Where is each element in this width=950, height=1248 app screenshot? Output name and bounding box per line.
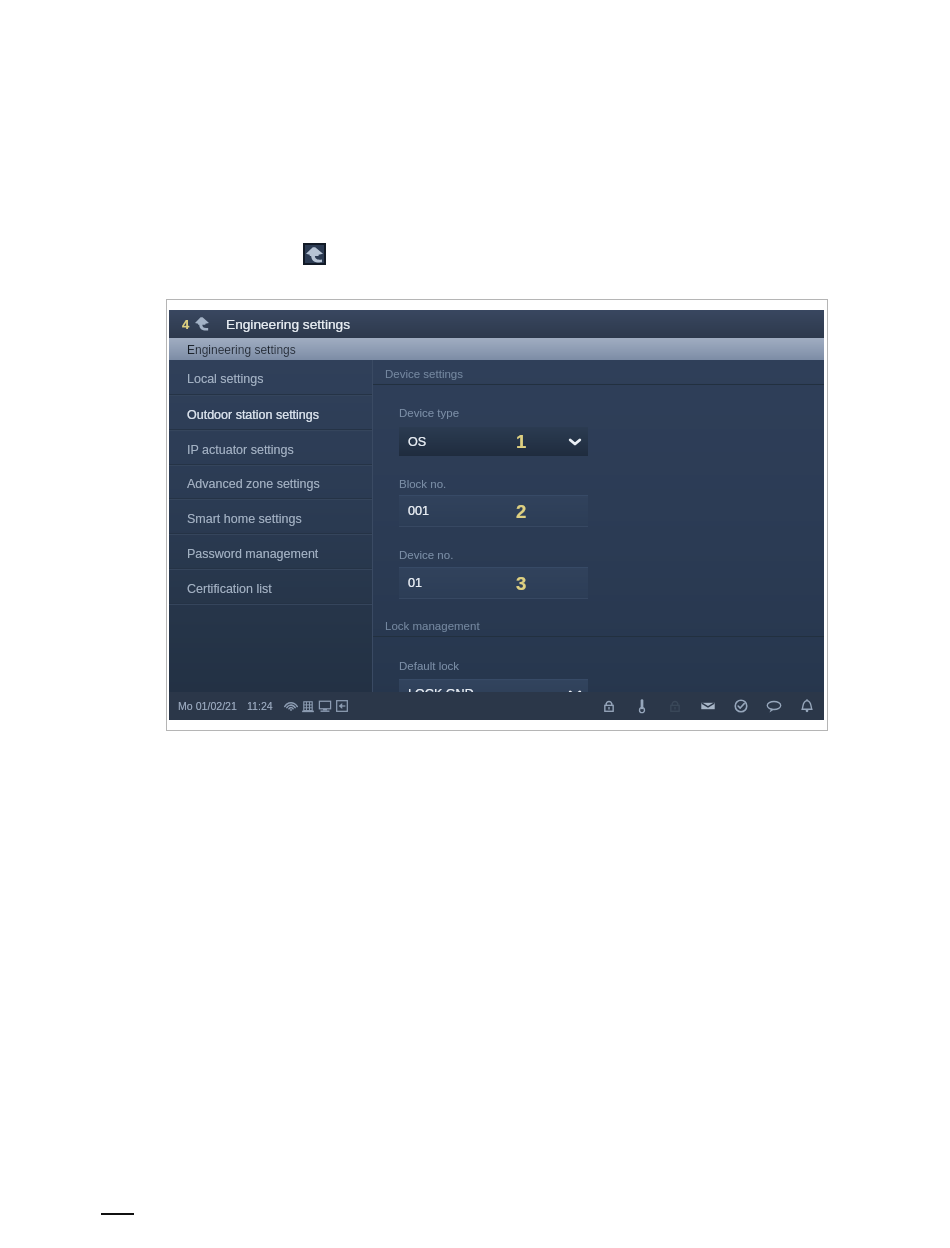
staticText: Default lock [399, 660, 460, 673]
button[interactable]: Up one level [194, 316, 210, 332]
staticText: 11:24 [247, 700, 273, 712]
button[interactable]: 001 [399, 495, 588, 527]
staticText: 3 [516, 573, 527, 594]
staticText: Local settings [187, 372, 264, 386]
button[interactable]: Call history [733, 698, 749, 714]
staticText: IP actuator settings [187, 443, 294, 457]
button[interactable]: Notifications [799, 698, 815, 714]
staticText: Device type [399, 407, 460, 420]
button[interactable]: Advanced zone settings [169, 466, 372, 500]
button[interactable]: OS [399, 427, 588, 456]
button[interactable]: Password management [169, 535, 372, 570]
staticText: Mo 01/02/21 [178, 700, 237, 712]
staticText: Outdoor station settings [187, 408, 320, 422]
button[interactable]: IP actuator settings [169, 431, 372, 466]
button[interactable]: Temperature [634, 698, 650, 714]
staticText: 1 [516, 431, 527, 452]
staticText: Smart home settings [187, 512, 302, 526]
staticText: Advanced zone settings [187, 477, 320, 491]
staticText: 001 [408, 504, 430, 518]
button[interactable]: Building [301, 699, 315, 713]
staticText: Password management [187, 547, 319, 561]
button[interactable]: Outdoor station settings [169, 396, 372, 431]
staticText: Device settings [385, 368, 463, 381]
staticText: Certification list [187, 582, 272, 596]
button[interactable]: Chat [766, 698, 782, 714]
button[interactable]: Monitoring [318, 699, 332, 713]
button[interactable]: LOCK GND [399, 679, 588, 708]
button[interactable]: Wi-Fi [284, 699, 298, 713]
button[interactable]: Navigate up [303, 243, 326, 265]
button[interactable]: Local settings [169, 360, 372, 396]
staticText: OS [408, 435, 427, 449]
button[interactable]: Certification list [169, 570, 372, 605]
button[interactable]: Locked [601, 698, 617, 714]
staticText: Block no. [399, 478, 447, 491]
staticText: Engineering settings [226, 317, 351, 332]
button[interactable]: Unlocked [667, 698, 683, 714]
staticText: Lock management [385, 620, 480, 633]
staticText: 2 [516, 501, 527, 522]
button[interactable]: Messages [700, 698, 716, 714]
button[interactable]: Log out [335, 699, 349, 713]
staticText: Engineering settings [187, 343, 296, 356]
button[interactable]: Smart home settings [169, 500, 372, 535]
staticText: Device no. [399, 549, 454, 562]
button[interactable]: 01 [399, 567, 588, 599]
staticText: 01 [408, 576, 423, 590]
staticText: 4 [182, 317, 190, 332]
staticText: LOCK GND [408, 687, 474, 701]
